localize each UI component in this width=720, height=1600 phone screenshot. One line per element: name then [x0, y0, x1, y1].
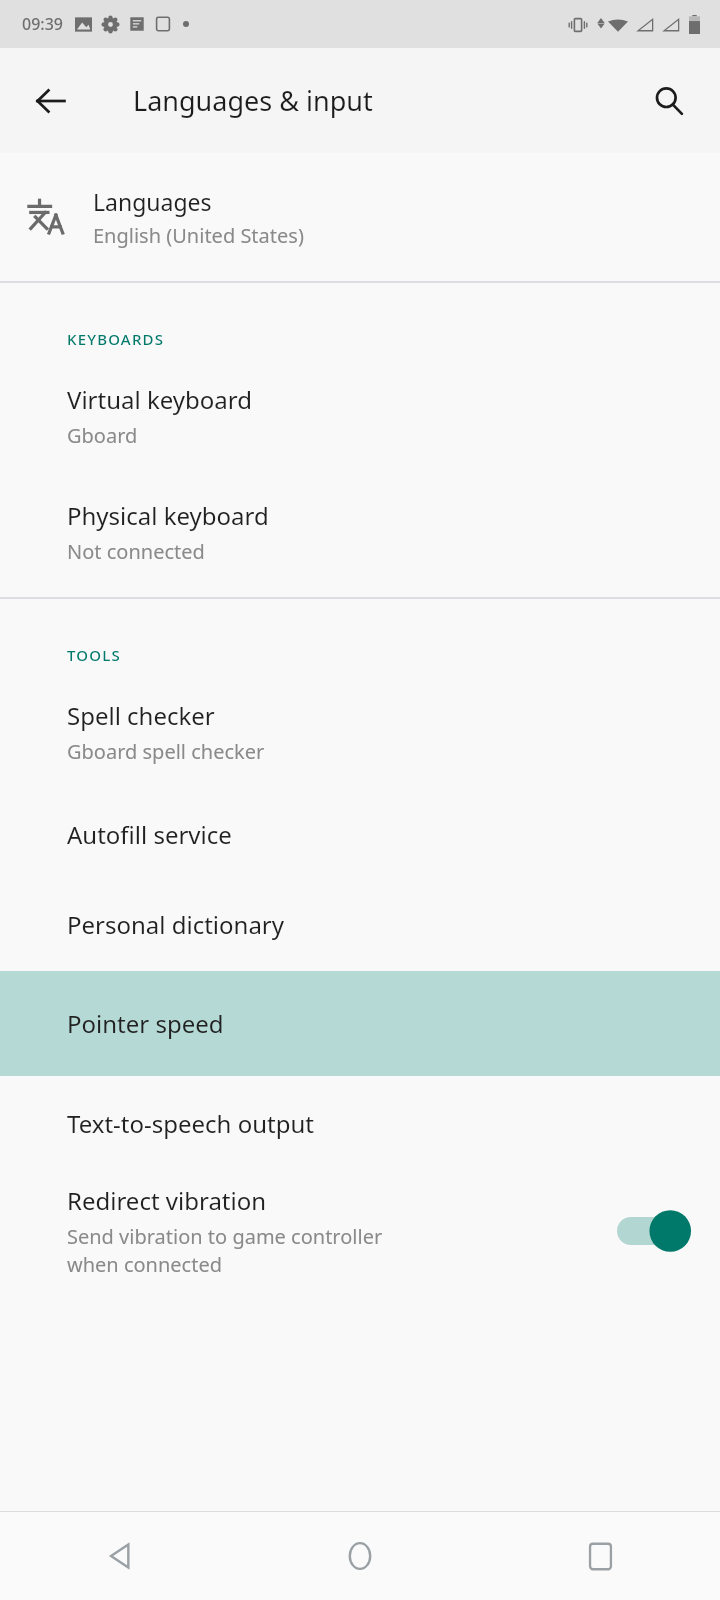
button[interactable]: Recents	[480, 1512, 720, 1600]
button[interactable]: Back	[0, 1512, 240, 1600]
staticText: TOOLS	[67, 645, 121, 665]
staticText: Gboard	[67, 422, 138, 449]
staticText: Not connected	[67, 538, 205, 565]
button[interactable]: Virtual keyboard	[0, 379, 720, 453]
staticText: Redirect vibration	[67, 1184, 267, 1217]
staticText: Virtual keyboard	[67, 383, 252, 416]
staticText: Personal dictionary	[67, 908, 285, 941]
staticText: Pointer speed	[67, 1007, 224, 1040]
button[interactable]: Search	[638, 70, 700, 132]
staticText: Autofill service	[67, 818, 232, 851]
button[interactable]: Pointer speed	[0, 971, 720, 1076]
staticText: Gboard spell checker	[67, 738, 265, 765]
button[interactable]: Personal dictionary	[0, 889, 720, 959]
staticText: Languages & input	[133, 82, 373, 119]
button[interactable]: Back	[20, 70, 82, 132]
staticText: KEYBOARDS	[67, 329, 165, 349]
button[interactable]: Autofill service	[0, 799, 720, 869]
staticText: Languages	[93, 186, 212, 217]
staticText: English (United States)	[93, 222, 304, 249]
staticText: Send vibration to game controller when c…	[67, 1223, 383, 1278]
button[interactable]: Spell checker	[0, 695, 720, 769]
button[interactable]: Home	[240, 1512, 480, 1600]
button[interactable]: Text-to-speech output	[0, 1088, 720, 1158]
button[interactable]: Physical keyboard	[0, 495, 720, 569]
button[interactable]: Languages	[0, 153, 720, 281]
staticText: Spell checker	[67, 699, 215, 732]
staticText: Text-to-speech output	[67, 1107, 314, 1140]
button[interactable]: Redirect vibration	[0, 1178, 720, 1284]
staticText: Physical keyboard	[67, 499, 269, 532]
staticText: 09:39	[22, 13, 63, 35]
